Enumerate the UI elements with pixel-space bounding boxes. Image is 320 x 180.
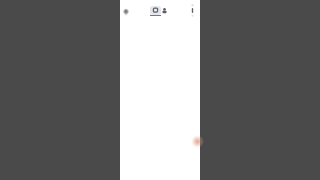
button[interactable]: Back bbox=[121, 6, 131, 16]
button[interactable]: More options bbox=[188, 3, 197, 18]
button[interactable]: Add bbox=[189, 133, 205, 149]
button[interactable]: Account bbox=[160, 6, 169, 15]
button[interactable]: Screenshot bbox=[150, 6, 161, 15]
